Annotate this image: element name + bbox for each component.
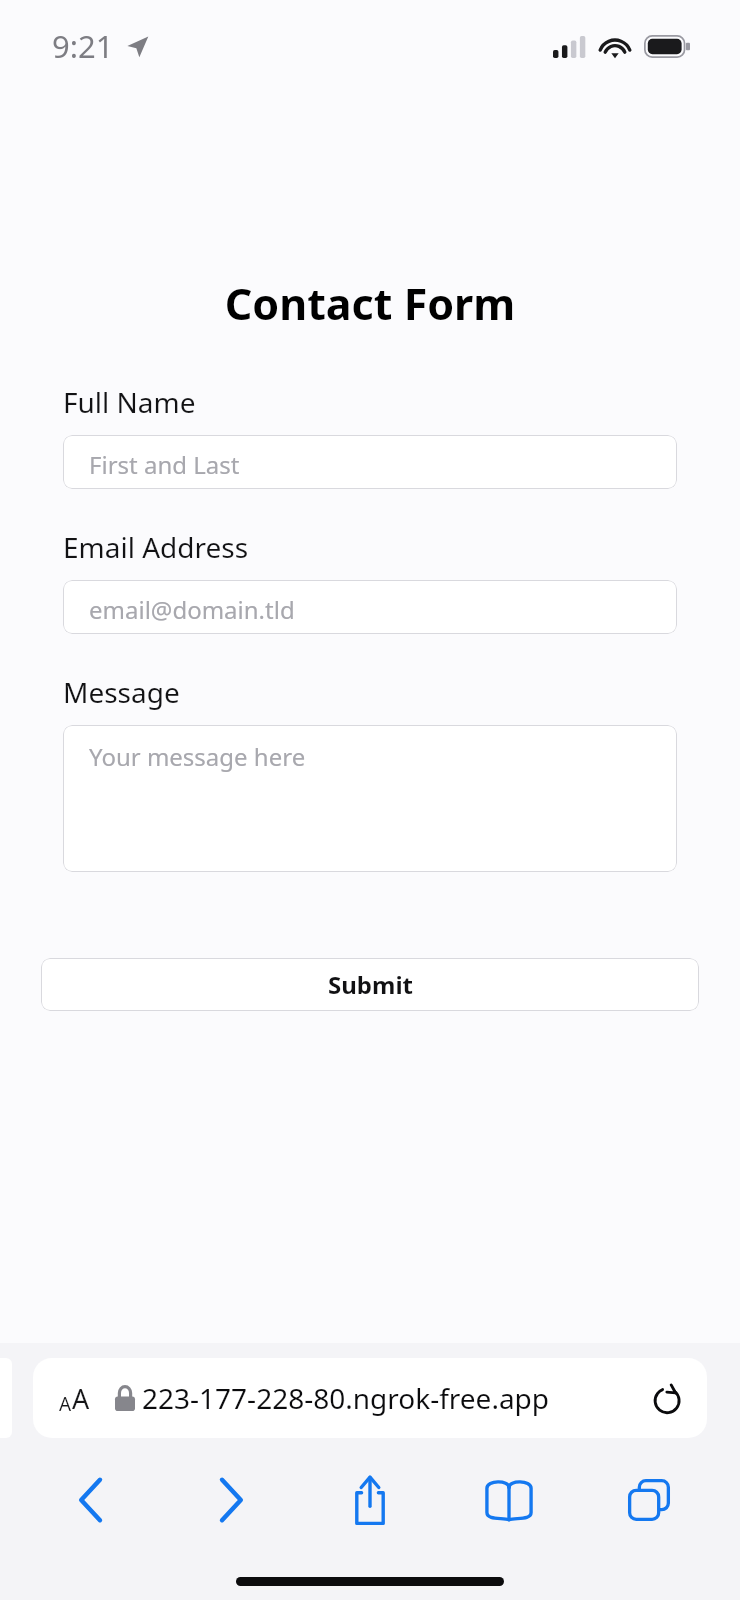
button[interactable]: First and Last [63,435,677,489]
staticText: Email Address [63,528,249,566]
button[interactable]: Page settings [33,1358,707,1438]
button[interactable]: Tabs [601,1462,697,1538]
button[interactable]: Back [43,1462,139,1538]
staticText: A [59,1391,72,1417]
button[interactable]: Forward [183,1462,279,1538]
staticText: Full Name [63,383,196,421]
staticText: Message [63,673,180,711]
staticText: Your message here [89,740,306,773]
staticText: A [72,1380,90,1417]
other: Page settings [59,1380,90,1417]
staticText: 223-177-228-80.ngrok-free.app [142,1379,550,1417]
staticText: 9:21 [52,25,114,67]
button[interactable]: email@domain.tld [63,580,677,634]
staticText: Submit [328,968,413,1001]
staticText: First and Last [89,448,240,481]
button[interactable]: Your message here [63,725,677,872]
staticText: email@domain.tld [89,593,295,626]
button[interactable]: Share [322,1462,418,1538]
button[interactable]: Submit [41,958,699,1011]
button[interactable]: Bookmarks [461,1462,557,1538]
staticText: Contact Form [0,274,740,333]
